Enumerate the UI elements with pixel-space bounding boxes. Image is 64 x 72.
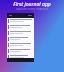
button[interactable]: [8, 55, 33, 58]
staticText: First journal app: [0, 1, 64, 8]
button[interactable]: [8, 25, 33, 30]
button[interactable]: [8, 49, 33, 54]
button[interactable]: [8, 37, 33, 42]
button[interactable]: [8, 43, 33, 48]
button[interactable]: [8, 31, 33, 36]
button[interactable]: [8, 19, 33, 24]
staticText: capture every moment: [0, 7, 64, 11]
